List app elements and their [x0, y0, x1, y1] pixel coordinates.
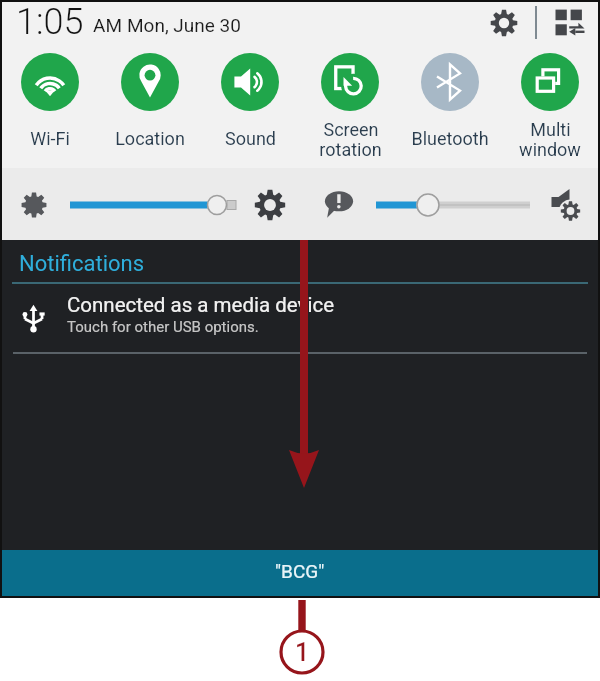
staticText: 1 — [295, 638, 310, 667]
staticText: Connected as a media device — [67, 293, 335, 317]
button[interactable]: Settings — [488, 7, 520, 39]
button[interactable]: Notification volume — [323, 188, 355, 220]
staticText: Sound — [225, 128, 276, 149]
staticText: Notifications — [19, 251, 145, 277]
staticText: Mon, June 30 — [127, 14, 241, 36]
staticText: Bluetooth — [411, 128, 489, 149]
button[interactable]: Sound settings — [549, 188, 583, 222]
staticText: window — [519, 139, 581, 156]
button[interactable]: Location — [100, 46, 200, 168]
button[interactable]: Auto brightness — [20, 191, 48, 219]
button[interactable]: Screen — [300, 46, 400, 168]
button[interactable]: Bluetooth — [400, 46, 500, 168]
staticText: Screen — [323, 119, 379, 140]
staticText: rotation — [319, 139, 382, 156]
staticText: Wi-Fi — [30, 128, 70, 149]
staticText: Touch for other USB options. — [67, 318, 259, 336]
staticText: Multi — [530, 119, 571, 140]
staticText: "BCG" — [275, 560, 325, 582]
button[interactable]: Connected as a media device — [0, 284, 600, 352]
button[interactable]: Wi-Fi — [0, 46, 100, 168]
button[interactable]: Brightness settings — [254, 189, 286, 221]
staticText: AM — [93, 14, 122, 36]
button[interactable]: Sound — [200, 46, 300, 168]
staticText: 1:05 — [16, 1, 84, 43]
button[interactable]: "BCG" — [0, 550, 600, 598]
button[interactable]: Multi — [500, 46, 600, 168]
button[interactable]: Quick settings edit — [553, 7, 586, 40]
staticText: Location — [115, 128, 185, 149]
